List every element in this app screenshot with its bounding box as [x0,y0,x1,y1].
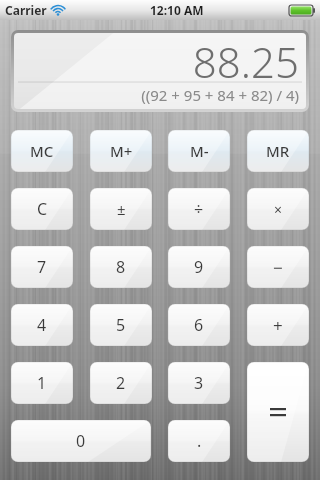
staticText: 3 [194,372,204,394]
button[interactable]: Plus minus [90,188,152,230]
button[interactable]: Multiply [247,188,309,230]
button[interactable]: MC [11,130,73,172]
button[interactable]: 9 [168,246,230,288]
staticText: MC [30,141,54,161]
staticText: 0 [76,430,86,452]
staticText: M- [190,141,209,161]
button[interactable]: 1 [11,362,73,404]
button[interactable]: 2 [90,362,152,404]
staticText: 12:10 AM [150,2,204,18]
button[interactable]: M- [168,130,230,172]
button[interactable]: Plus [247,304,309,346]
staticText: 6 [194,314,204,336]
staticText: . [197,430,202,452]
staticText: ((92 + 95 + 84 + 82) / 4) [141,85,299,105]
button[interactable]: Minus [247,246,309,288]
staticText: 1 [37,372,47,394]
button[interactable]: 7 [11,246,73,288]
staticText: 4 [37,314,47,336]
staticText: C [37,198,48,220]
button[interactable]: 5 [90,304,152,346]
button[interactable]: 6 [168,304,230,346]
staticText: − [273,256,283,279]
staticText: 88.25 [192,33,299,82]
staticText: 8 [116,256,126,278]
button[interactable]: 8 [90,246,152,288]
staticText: MR [266,141,290,161]
staticText: M+ [110,141,133,161]
staticText: Carrier [5,2,47,18]
staticText: ± [117,199,126,219]
button[interactable]: 0 [11,420,151,462]
button[interactable]: Equals [247,362,309,462]
button[interactable]: MR [247,130,309,172]
button[interactable]: Decimal point [168,420,230,462]
staticText: 9 [194,256,204,278]
button[interactable]: Divide [168,188,230,230]
staticText: × [274,200,283,219]
staticText: 7 [37,256,47,278]
button[interactable]: C [11,188,73,230]
button[interactable]: 3 [168,362,230,404]
button[interactable]: M+ [90,130,152,172]
staticText: 5 [116,314,126,336]
button[interactable]: 4 [11,304,73,346]
staticText: + [273,314,283,337]
staticText: ÷ [194,198,204,220]
staticText: 2 [116,372,126,394]
